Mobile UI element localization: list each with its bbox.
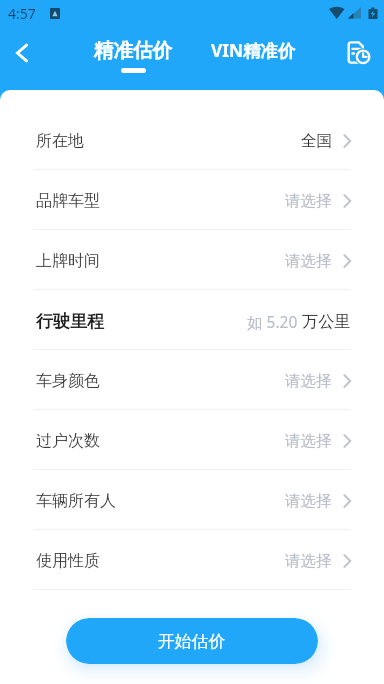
staticText: VIN精准价	[211, 39, 295, 63]
button[interactable]: 品牌车型	[0, 170, 384, 230]
staticText: 上牌时间	[36, 251, 100, 271]
button[interactable]: Back	[5, 36, 39, 70]
button[interactable]: VIN精准价	[211, 39, 295, 68]
staticText: 请选择	[285, 251, 332, 271]
staticText: 全国	[301, 131, 332, 151]
button[interactable]: 上牌时间	[0, 230, 384, 290]
staticText: 品牌车型	[36, 191, 100, 211]
staticText: 车身颜色	[36, 371, 100, 391]
staticText: 所在地	[36, 131, 84, 151]
staticText: 请选择	[285, 551, 332, 571]
staticText: 开始估价	[158, 631, 226, 652]
staticText: 行驶里程	[36, 311, 104, 332]
staticText: 请选择	[285, 371, 332, 391]
staticText: 请选择	[285, 491, 332, 511]
staticText: 车辆所有人	[36, 491, 116, 511]
staticText: 过户次数	[36, 431, 100, 451]
staticText: 万公里	[302, 311, 351, 331]
button[interactable]: Valuation history	[342, 35, 376, 69]
button[interactable]: 使用性质	[0, 530, 384, 590]
button[interactable]: 所在地	[0, 110, 384, 170]
staticText: 如 5.20	[247, 311, 302, 332]
staticText: 请选择	[285, 191, 332, 211]
staticText: 请选择	[285, 431, 332, 451]
staticText: 精准估价	[94, 38, 172, 63]
button[interactable]: 精准估价	[94, 38, 172, 73]
staticText: 使用性质	[36, 551, 100, 571]
button[interactable]: 车辆所有人	[0, 470, 384, 530]
button[interactable]: 车身颜色	[0, 350, 384, 410]
button[interactable]: 行驶里程	[0, 290, 384, 350]
button[interactable]: 过户次数	[0, 410, 384, 470]
staticText: 4:57	[8, 4, 36, 23]
button[interactable]: 开始估价	[66, 618, 318, 664]
